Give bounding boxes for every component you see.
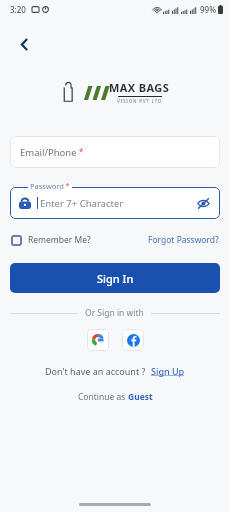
staticText: * [64, 181, 70, 190]
staticText: Guest [128, 391, 153, 403]
button[interactable]: Forgot Password? [148, 234, 219, 246]
button[interactable]: Email/Phone [10, 136, 220, 168]
staticText: Sign Up [151, 365, 185, 377]
button[interactable]: Sign in with Facebook [122, 329, 144, 351]
staticText: Enter 7+ Character [40, 197, 124, 210]
button[interactable]: Sign in with Google [87, 329, 109, 351]
staticText: 3:20 [10, 4, 26, 15]
staticText: MAX BAGS [109, 80, 170, 95]
staticText: VISION PVT LTD [117, 98, 163, 104]
button[interactable]: Back [10, 30, 38, 58]
button[interactable] [10, 187, 220, 219]
button[interactable]: Guest [128, 391, 153, 403]
staticText: Password [30, 181, 64, 191]
button[interactable]: Show password [195, 195, 211, 211]
staticText: Sign In [97, 271, 134, 286]
button[interactable]: Remember Me? [11, 234, 91, 246]
staticText: Forgot Password? [148, 234, 219, 246]
staticText: 99% [200, 4, 216, 15]
staticText: Remember Me? [28, 234, 91, 246]
staticText: Or Sign in with [85, 307, 144, 319]
staticText: Continue as [78, 391, 128, 403]
button[interactable]: Sign In [10, 263, 220, 293]
button[interactable]: Sign Up [151, 365, 185, 377]
staticText: Don't have an account ? [45, 365, 146, 377]
staticText: Email/Phone [20, 146, 77, 159]
staticText: * [77, 146, 84, 157]
